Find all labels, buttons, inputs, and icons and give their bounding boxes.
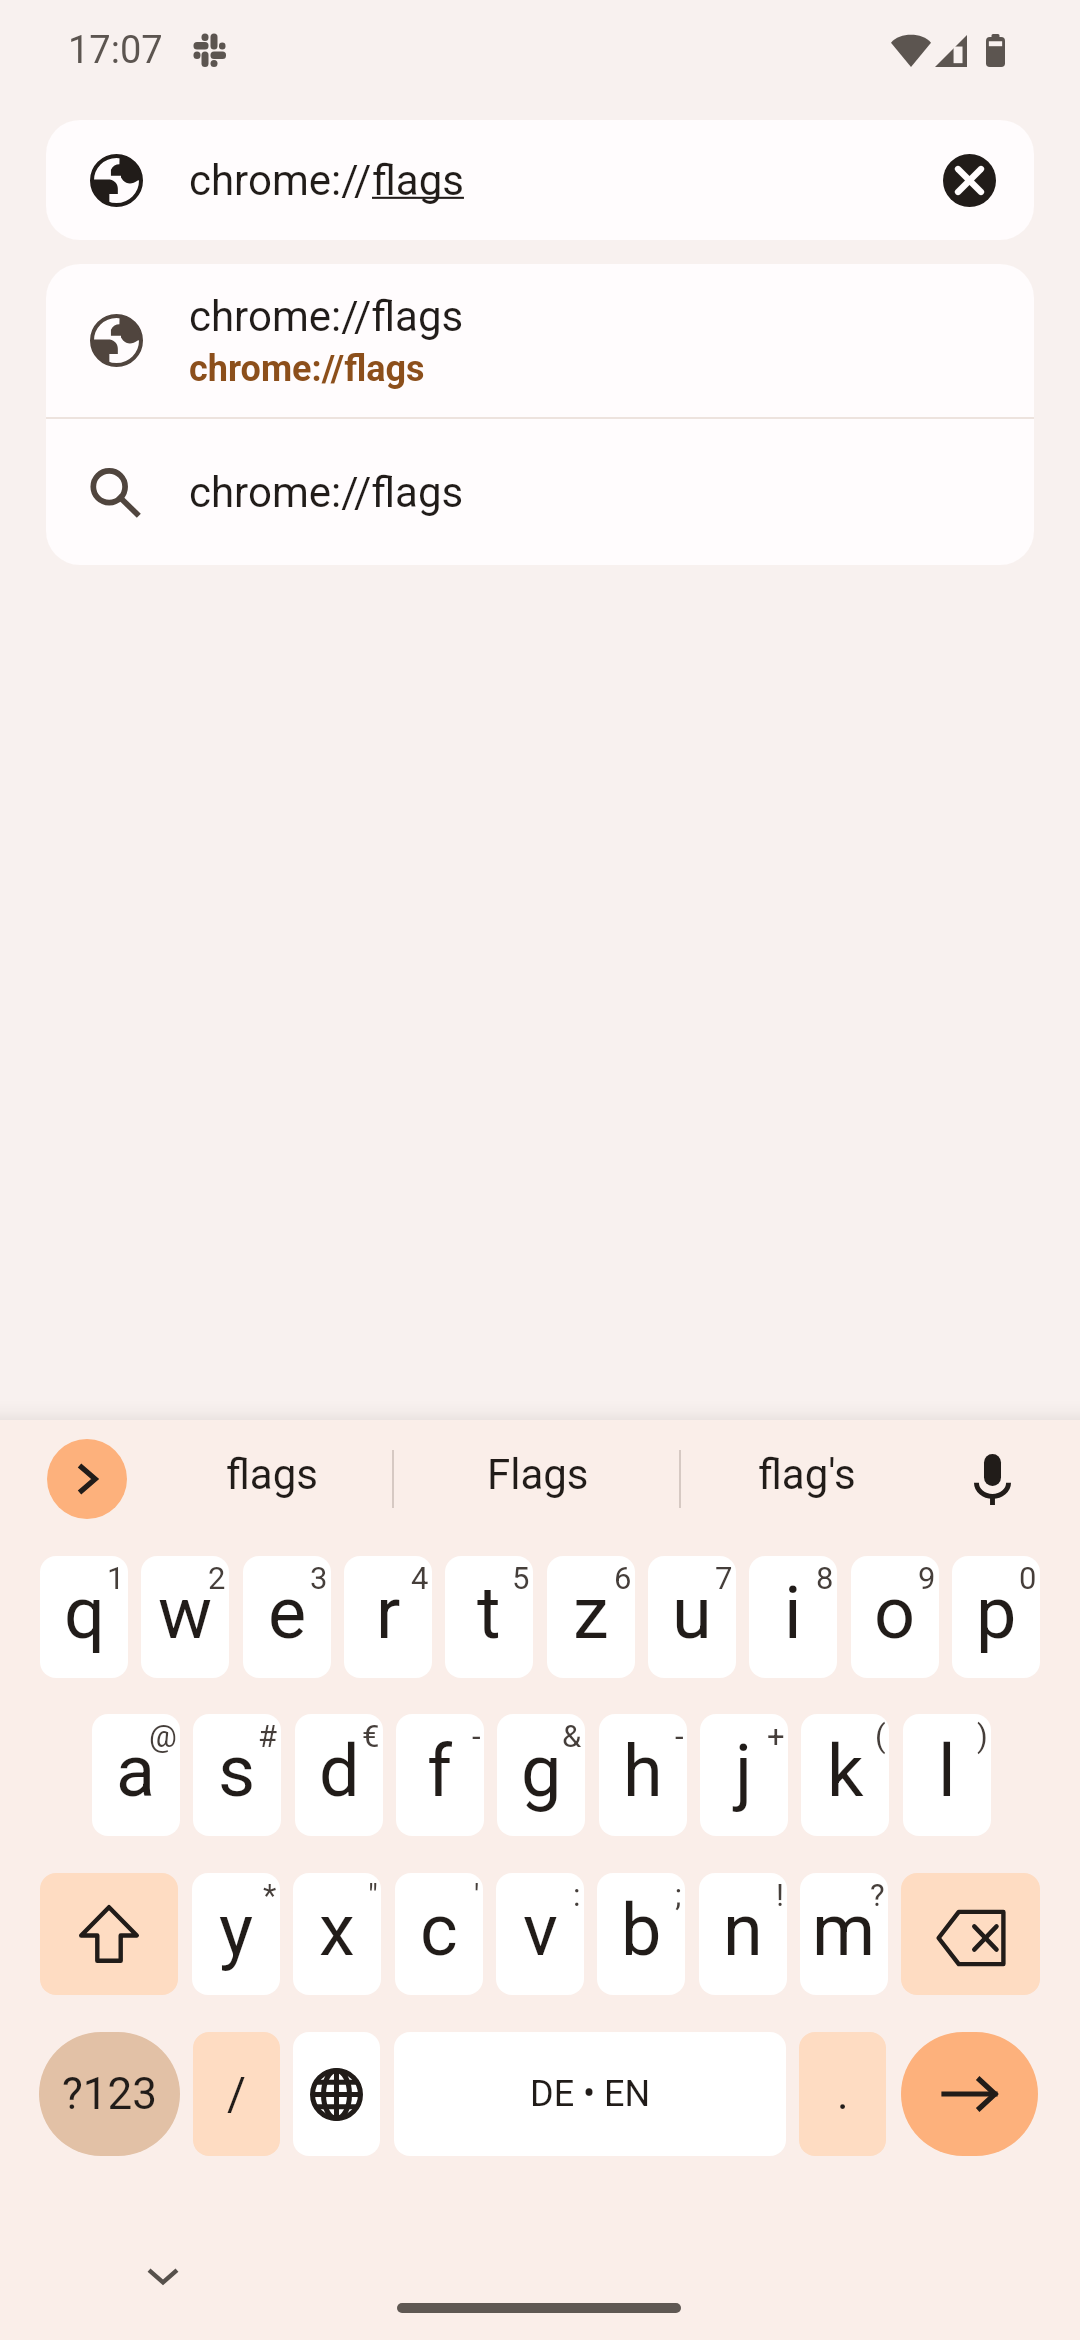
button[interactable]: Voice input [956,1443,1028,1515]
button[interactable]: z [547,1556,635,1678]
staticText: g [521,1729,562,1813]
staticText: w [158,1571,213,1655]
staticText: " [368,1877,378,1913]
button[interactable]: q [40,1556,128,1678]
staticText: 7 [715,1560,733,1596]
staticText: f [427,1729,453,1813]
staticText: ( [875,1718,886,1754]
staticText: € [362,1718,380,1754]
button[interactable]: p [952,1556,1040,1678]
staticText: 5 [512,1560,530,1596]
staticText: ' [474,1877,480,1913]
button[interactable]: y [192,1873,280,1995]
button[interactable]: b [597,1873,685,1995]
button[interactable]: flag's [683,1420,931,1538]
button[interactable]: chrome://flags [46,264,1034,417]
button[interactable]: s [193,1714,281,1836]
staticText: 6 [614,1560,632,1596]
staticText: flag's [758,1450,856,1499]
staticText: / [227,2067,246,2121]
staticText: ?123 [62,2068,157,2120]
staticText: 17:07 [68,28,163,73]
staticText: r [376,1571,401,1655]
button[interactable]: f [396,1714,484,1836]
staticText: chrome://flags [189,292,464,341]
staticText: . [837,2068,849,2120]
button[interactable]: chrome://flags [46,419,1034,565]
button[interactable]: DE • EN [394,2032,786,2156]
staticText: * [263,1877,277,1913]
button[interactable]: j [700,1714,788,1836]
staticText: @ [149,1718,177,1754]
staticText: p [976,1571,1017,1655]
staticText: - [472,1718,481,1754]
staticText: o [874,1571,916,1655]
staticText: n [723,1888,763,1972]
staticText: 9 [918,1560,936,1596]
button[interactable]: n [699,1873,787,1995]
button[interactable]: m [800,1873,888,1995]
staticText: ! [776,1877,784,1913]
button[interactable]: chrome:// [46,120,1034,240]
staticText: & [562,1718,582,1754]
button[interactable]: Backspace [901,1873,1040,1995]
button[interactable]: w [141,1556,229,1678]
button[interactable]: a [92,1714,180,1836]
button[interactable]: r [344,1556,432,1678]
staticText: chrome:// [189,156,372,205]
button[interactable]: ?123 [39,2032,180,2156]
staticText: m [812,1888,876,1972]
button[interactable]: x [293,1873,381,1995]
button[interactable]: h [599,1714,687,1836]
button[interactable]: d [295,1714,383,1836]
staticText: s [218,1729,256,1813]
staticText: x [319,1888,355,1972]
staticText: c [420,1888,458,1972]
button[interactable]: Flags [396,1420,680,1538]
staticText: z [573,1571,609,1655]
staticText: + [767,1718,785,1754]
staticText: chrome://flags [189,468,464,517]
staticText: l [938,1729,956,1813]
staticText: t [477,1571,501,1655]
staticText: chrome://flags [189,348,425,390]
staticText: 0 [1019,1560,1037,1596]
button[interactable]: g [497,1714,585,1836]
staticText: 4 [411,1560,429,1596]
staticText: q [64,1571,105,1655]
staticText: b [621,1888,662,1972]
staticText: flags [226,1450,318,1499]
button[interactable]: t [445,1556,533,1678]
staticText: 3 [310,1560,328,1596]
button[interactable]: u [648,1556,736,1678]
staticText: k [827,1729,864,1813]
button[interactable]: k [801,1714,889,1836]
button[interactable]: v [496,1873,584,1995]
staticText: i [784,1571,802,1655]
button[interactable]: Change language [293,2032,380,2156]
staticText: DE • EN [530,2073,651,2115]
button[interactable]: e [243,1556,331,1678]
button[interactable]: flags [154,1420,389,1538]
staticText: y [219,1888,254,1972]
staticText: v [523,1888,558,1972]
button[interactable]: / [193,2032,280,2156]
staticText: ) [977,1718,988,1754]
staticText: a [116,1729,156,1813]
button[interactable]: Shift [40,1873,178,1995]
button[interactable]: c [395,1873,483,1995]
staticText: h [623,1729,663,1813]
button[interactable]: Hide keyboard [133,2247,193,2307]
button[interactable]: Clear text [943,154,996,207]
staticText: u [672,1571,712,1655]
staticText: 2 [208,1560,226,1596]
button[interactable]: o [851,1556,939,1678]
button[interactable]: i [749,1556,837,1678]
button[interactable]: Enter [901,2032,1038,2156]
staticText: e [268,1571,307,1655]
button[interactable]: . [799,2032,886,2156]
button[interactable]: More suggestions [47,1439,127,1519]
staticText: : [573,1877,581,1913]
staticText: # [258,1718,278,1754]
button[interactable]: l [903,1714,991,1836]
